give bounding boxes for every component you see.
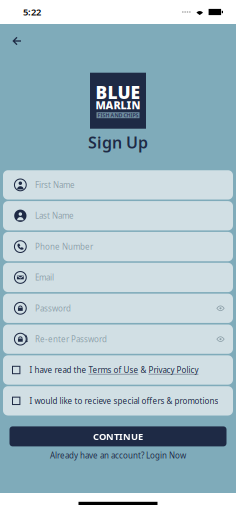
staticText: Email — [35, 272, 54, 283]
staticText: Phone Number — [35, 241, 93, 252]
button[interactable]: Already have an account? Login Now — [50, 450, 186, 460]
staticText: Password — [35, 303, 71, 314]
button[interactable]: CONTINUE — [9, 426, 226, 446]
staticText: I have read the Terms of Use & Privacy P… — [29, 365, 198, 375]
staticText: Already have an account? Login Now — [50, 450, 186, 461]
button[interactable]: I would like to recieve special offers &… — [3, 386, 233, 415]
staticText: First Name — [35, 180, 75, 190]
staticText: MARLIN — [95, 98, 140, 112]
staticText: CONTINUE — [93, 430, 143, 443]
staticText: 5:22 — [23, 6, 41, 18]
staticText: I would like to recieve special offers &… — [29, 395, 218, 406]
staticText: BLUE — [95, 81, 140, 104]
button[interactable]: Back — [6, 31, 28, 51]
staticText: Re-enter Password — [35, 334, 107, 344]
staticText: Sign Up — [88, 132, 148, 153]
button[interactable]: I have read the Terms of Use & Privacy P… — [3, 355, 233, 385]
staticText: Last Name — [35, 210, 74, 221]
staticText: FISH AND CHIPS — [97, 112, 138, 119]
